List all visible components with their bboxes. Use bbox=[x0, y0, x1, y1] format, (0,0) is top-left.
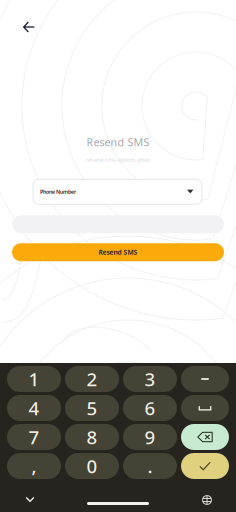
button[interactable]: Resend SMS bbox=[12, 243, 224, 261]
button[interactable]: 4 bbox=[7, 395, 61, 421]
button[interactable]: Change language bbox=[193, 489, 221, 511]
button[interactable]: 1 bbox=[7, 366, 61, 392]
staticText: 8 bbox=[86, 425, 97, 449]
staticText: Resend SMS bbox=[86, 135, 149, 149]
button[interactable]: . bbox=[123, 453, 177, 479]
staticText: 2 bbox=[86, 367, 97, 391]
staticText: , bbox=[31, 454, 36, 478]
staticText: . bbox=[147, 454, 152, 478]
button[interactable]: Space bbox=[181, 395, 229, 421]
staticText: 7 bbox=[28, 425, 39, 449]
button[interactable]: Back bbox=[15, 13, 43, 41]
staticText: 9 bbox=[144, 425, 155, 449]
button[interactable]: 9 bbox=[123, 424, 177, 450]
button[interactable]: 6 bbox=[123, 395, 177, 421]
button[interactable]: 8 bbox=[65, 424, 119, 450]
button[interactable]: 0 bbox=[65, 453, 119, 479]
button[interactable]: Backspace bbox=[181, 424, 229, 450]
button[interactable]: 3 bbox=[123, 366, 177, 392]
button[interactable]: 2 bbox=[65, 366, 119, 392]
button[interactable]: 7 bbox=[7, 424, 61, 450]
staticText: 5 bbox=[86, 396, 97, 420]
staticText: resend-sms-options-phon bbox=[86, 156, 150, 163]
button[interactable]: Done bbox=[181, 453, 229, 479]
staticText: 0 bbox=[86, 454, 97, 478]
staticText: 4 bbox=[28, 396, 39, 420]
button[interactable]: Dash bbox=[181, 366, 229, 392]
staticText: 1 bbox=[28, 367, 39, 391]
staticText: 3 bbox=[144, 367, 155, 391]
button[interactable]: 5 bbox=[65, 395, 119, 421]
staticText: Resend SMS bbox=[98, 248, 137, 257]
staticText: 6 bbox=[144, 396, 155, 420]
button[interactable]: Hide keyboard bbox=[16, 489, 44, 511]
staticText: Phone Number bbox=[40, 188, 76, 195]
button[interactable]: , bbox=[7, 453, 61, 479]
